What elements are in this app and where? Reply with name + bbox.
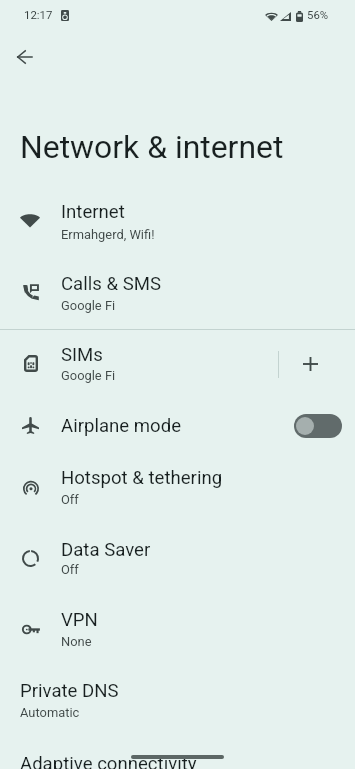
- staticText: 56%: [307, 8, 329, 21]
- staticText: SIMs: [61, 344, 103, 366]
- staticText: Hotspot & tethering: [61, 467, 223, 489]
- button[interactable]: Hotspot & tethering: [0, 452, 355, 522]
- button[interactable]: Add SIM: [287, 312, 335, 382]
- other: Alarm set: [61, 10, 69, 21]
- staticText: 12:17: [24, 8, 53, 21]
- button[interactable]: Calls & SMS: [0, 242, 355, 312]
- button[interactable]: SIMs: [0, 312, 278, 382]
- staticText: Off: [61, 562, 79, 577]
- button[interactable]: Data Saver: [0, 522, 355, 592]
- button[interactable]: Private DNS: [0, 664, 355, 734]
- button[interactable]: Adaptive connectivity: [0, 734, 355, 769]
- staticText: Airplane mode: [61, 415, 182, 437]
- staticText: Google Fi: [61, 298, 116, 313]
- button[interactable]: Airplane mode: [0, 400, 355, 452]
- staticText: Calls & SMS: [61, 273, 161, 295]
- staticText: Adaptive connectivity: [20, 753, 197, 769]
- staticText: Ermahgerd, Wifi!: [61, 227, 155, 242]
- button[interactable]: Navigate up: [4, 36, 45, 77]
- staticText: Off: [61, 492, 79, 507]
- staticText: VPN: [61, 609, 98, 631]
- staticText: Google Fi: [61, 368, 116, 383]
- staticText: None: [61, 634, 92, 649]
- staticText: Network & internet: [20, 128, 284, 165]
- staticText: Data Saver: [61, 539, 151, 561]
- staticText: Automatic: [20, 705, 80, 720]
- button[interactable]: VPN: [0, 592, 355, 662]
- staticText: Private DNS: [20, 680, 119, 702]
- staticText: Internet: [61, 201, 125, 223]
- button[interactable]: Internet: [0, 172, 355, 242]
